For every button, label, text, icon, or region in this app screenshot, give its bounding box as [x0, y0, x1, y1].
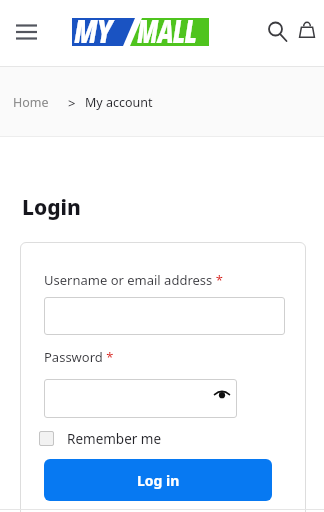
staticText: MALL	[137, 10, 196, 52]
staticText: Username or email address *	[44, 271, 223, 289]
staticText: Login	[22, 193, 81, 222]
staticText: Password *	[44, 348, 114, 366]
staticText: >	[68, 94, 76, 112]
staticText: Remember me	[67, 430, 162, 448]
staticText: My account	[85, 94, 153, 111]
staticText: Home	[13, 94, 49, 111]
staticText: Log in	[137, 471, 180, 490]
staticText: MY	[74, 10, 112, 52]
